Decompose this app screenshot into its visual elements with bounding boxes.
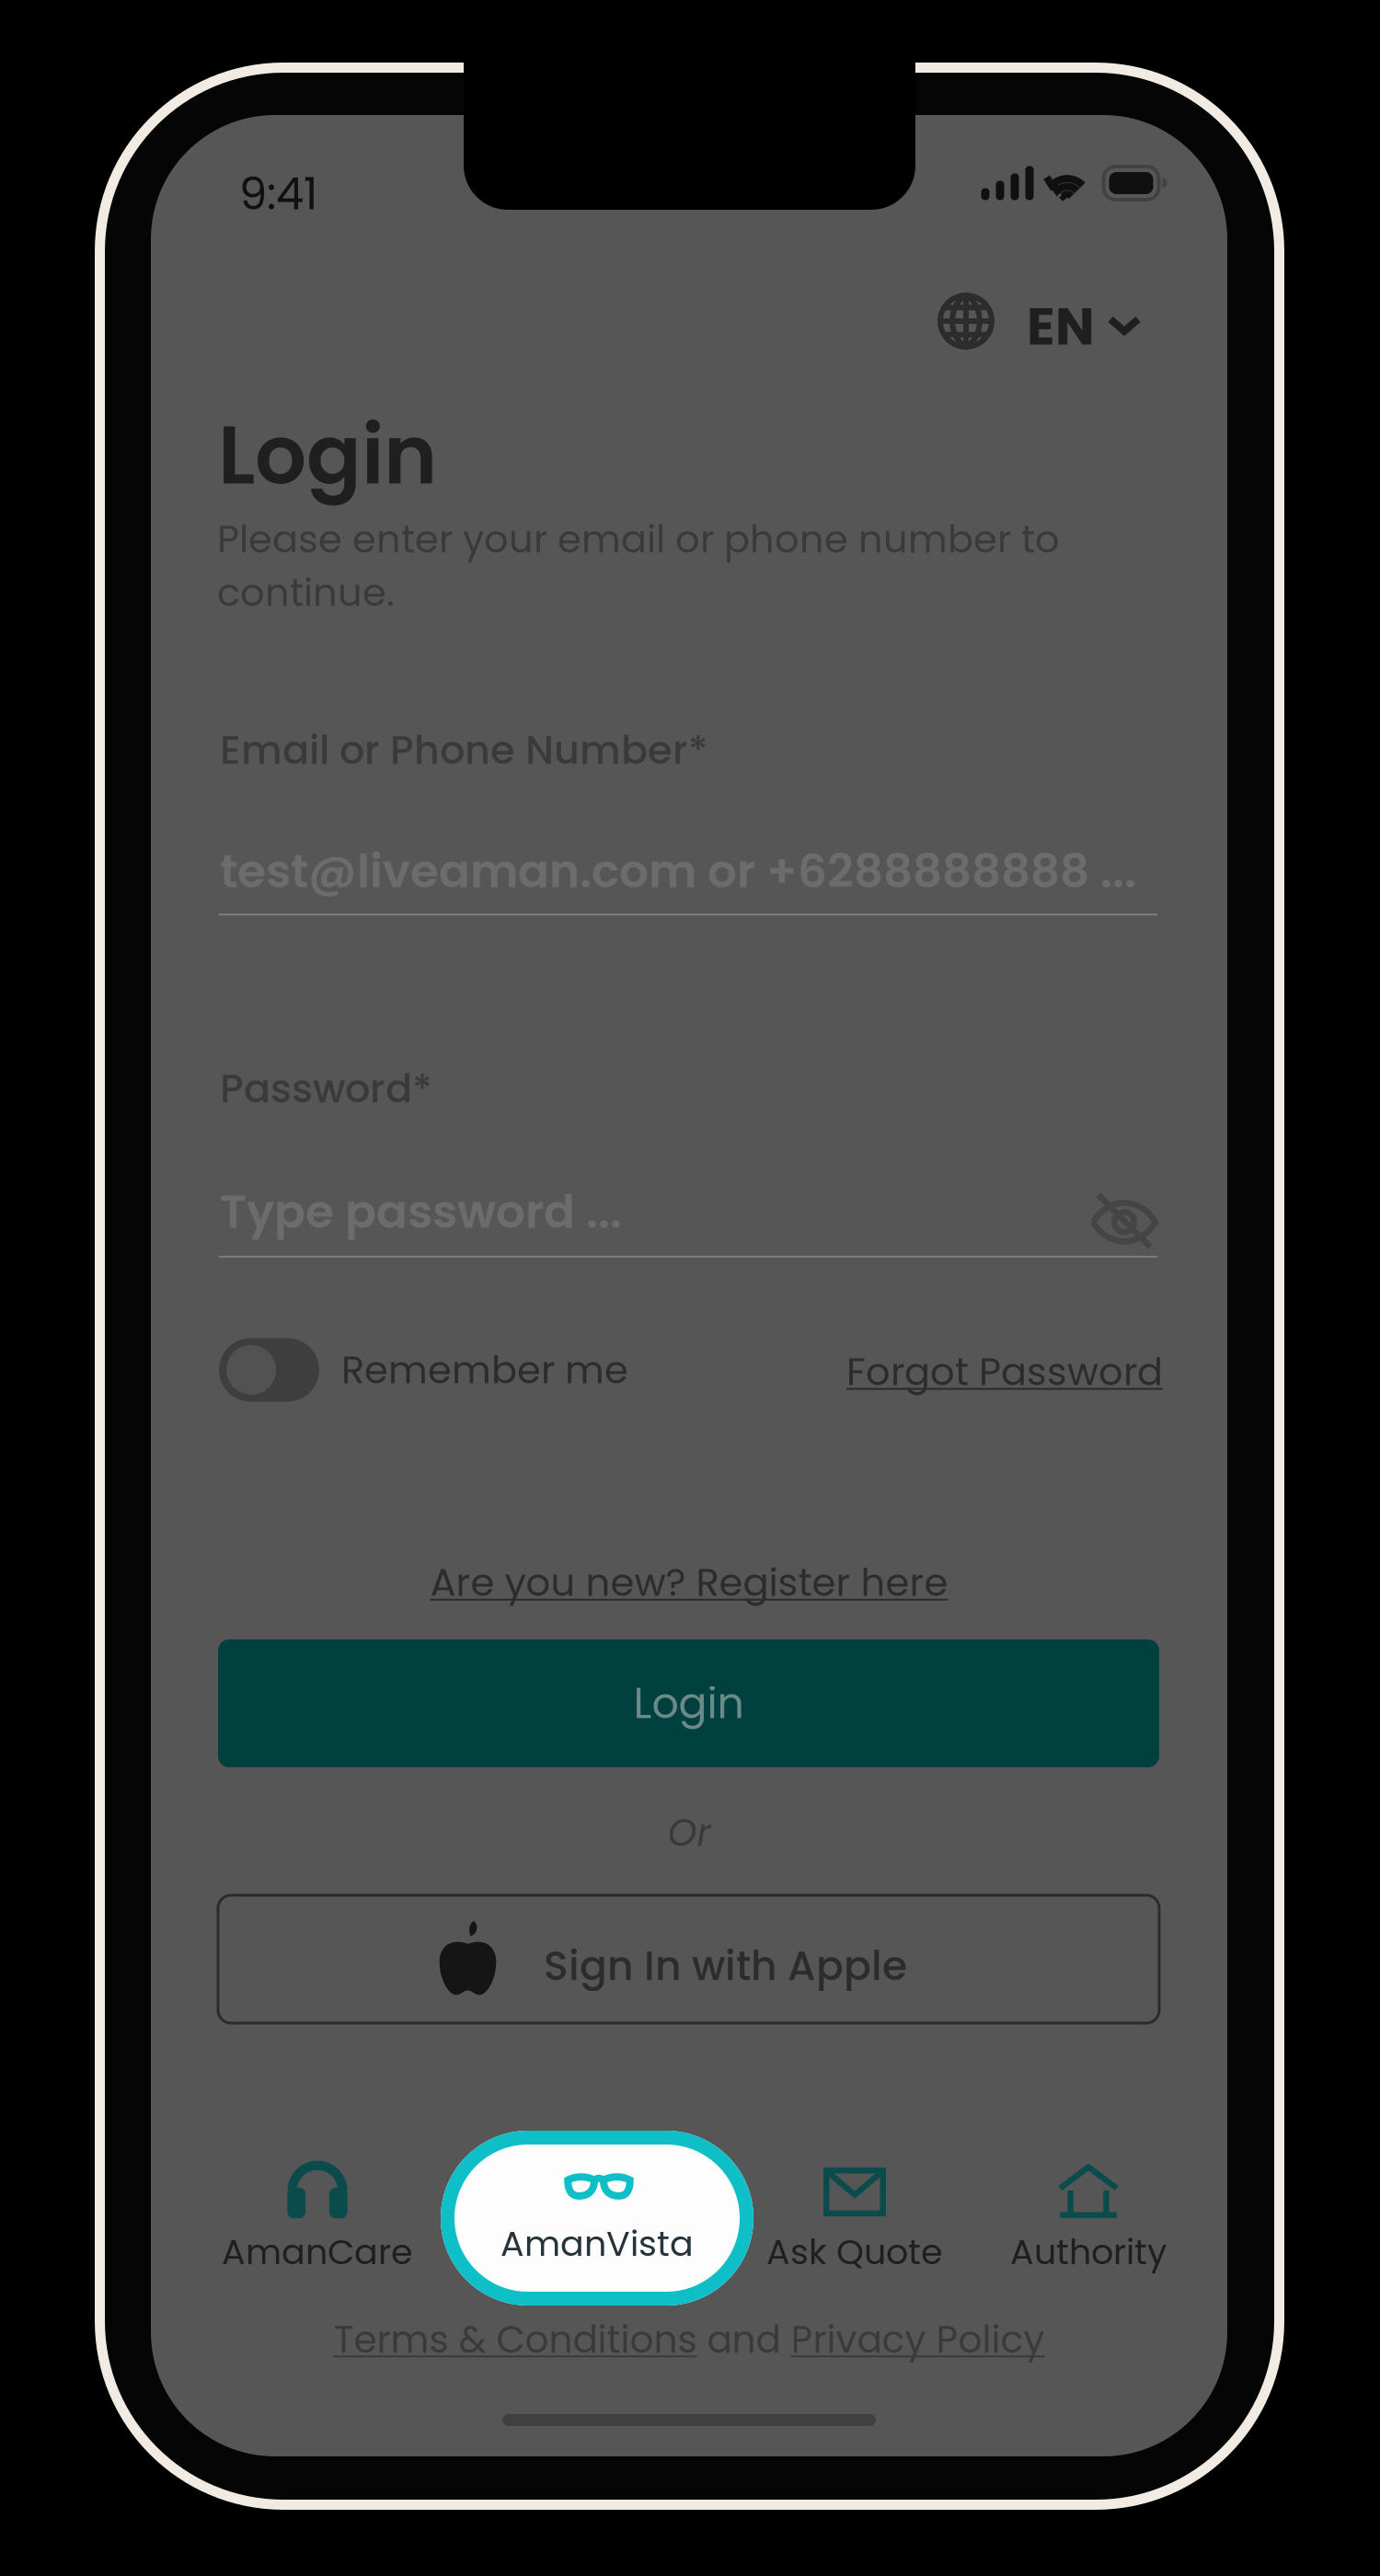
staticText: AmanVista <box>500 2219 694 2268</box>
staticText: Are you new? Register here <box>430 1556 948 1609</box>
staticText: Forgot Password <box>846 1345 1163 1398</box>
button[interactable]: Forgot Password <box>795 1334 1163 1409</box>
staticText: Ask Quote <box>766 2227 943 2276</box>
staticText: Sign In with Apple <box>544 1938 907 1994</box>
button[interactable]: Sign In with Apple <box>218 1895 1159 2023</box>
staticText: Terms & Conditions <box>333 2313 697 2366</box>
staticText: Login <box>633 1674 744 1733</box>
staticText: Password* <box>220 1061 432 1116</box>
button[interactable]: Terms & Conditions <box>333 2313 697 2366</box>
button[interactable]: EN <box>937 284 1158 358</box>
staticText: and <box>697 2313 791 2366</box>
button[interactable]: AmanCare <box>179 2163 455 2310</box>
staticText: 9:41 <box>239 163 317 225</box>
button[interactable]: Show password <box>1078 1175 1170 1267</box>
staticText: Type password ... <box>220 1179 622 1244</box>
staticText: test@liveaman.com or +6288888888 ... <box>220 839 1136 903</box>
staticText: Email or Phone Number* <box>220 722 708 778</box>
staticText: Please enter your email or phone number … <box>217 512 1060 619</box>
button[interactable]: Login <box>218 1639 1159 1767</box>
staticText: Remember me <box>341 1343 628 1397</box>
staticText: Or <box>667 1806 711 1859</box>
button[interactable]: AmanVista <box>441 2131 753 2306</box>
button[interactable]: Remember me <box>219 1332 651 1408</box>
staticText: Authority <box>1010 2227 1167 2276</box>
button[interactable]: Are you new? Register here <box>151 1547 1227 1618</box>
staticText: Privacy Policy <box>791 2313 1045 2366</box>
staticText: Login <box>218 398 437 512</box>
button[interactable]: Ask Quote <box>717 2163 993 2310</box>
staticText: AmanCare <box>222 2227 413 2276</box>
button[interactable]: Privacy Policy <box>791 2313 1045 2366</box>
button[interactable]: Authority <box>950 2163 1226 2310</box>
staticText: EN <box>1027 290 1095 363</box>
